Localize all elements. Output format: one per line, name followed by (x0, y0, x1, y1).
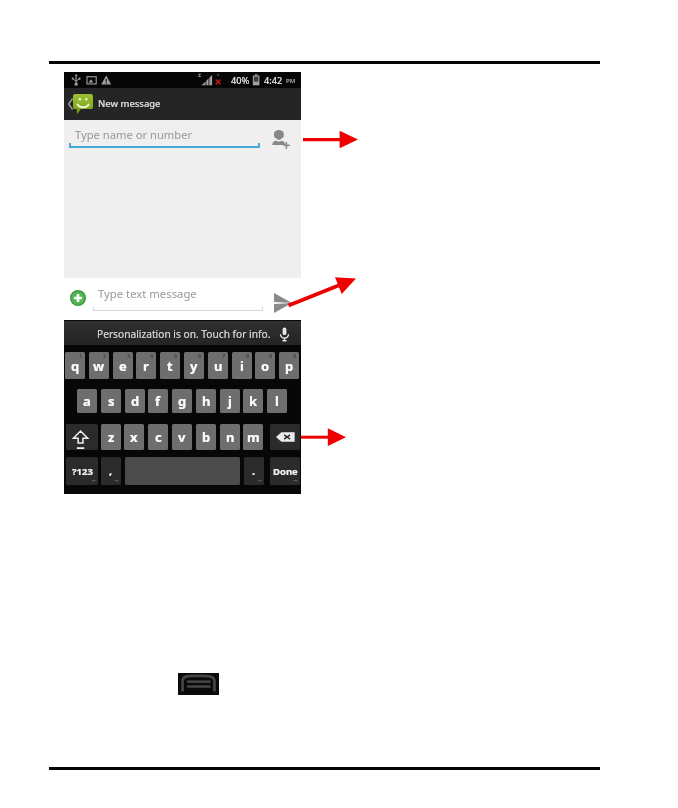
staticText: q (71, 357, 80, 375)
button[interactable]: z (101, 424, 121, 450)
button[interactable]: Backspace (270, 424, 300, 450)
staticText: b (202, 428, 211, 446)
staticText: g (178, 392, 187, 410)
button[interactable]: j (220, 389, 240, 413)
button[interactable]: Voice input (278, 326, 291, 342)
staticText: 5 (174, 352, 178, 359)
button[interactable]: ?123 (66, 457, 98, 485)
staticText: f (155, 392, 161, 410)
staticText: 1 (79, 352, 83, 359)
button[interactable]: k (243, 389, 263, 413)
button[interactable]: p (279, 352, 299, 379)
staticText: 3 (127, 352, 131, 359)
staticText: j (228, 392, 232, 410)
staticText: o (261, 357, 270, 375)
staticText: Type text message (98, 286, 197, 301)
button[interactable]: Keyboard (178, 673, 219, 695)
staticText: e (119, 357, 127, 375)
staticText: c (155, 428, 162, 446)
button[interactable]: t (160, 352, 180, 379)
button[interactable]: w (89, 352, 109, 379)
other: Back (65, 92, 76, 116)
staticText: ?123 (72, 465, 93, 478)
button[interactable]: l (267, 389, 287, 413)
staticText: u (214, 357, 223, 375)
button[interactable]: g (172, 389, 192, 413)
button[interactable]: s (101, 389, 121, 413)
staticText: 6 (198, 352, 202, 359)
button[interactable]: b (196, 424, 216, 450)
staticText: t (167, 357, 173, 375)
staticText: 7 (222, 352, 226, 359)
button[interactable]: q (65, 352, 85, 379)
button[interactable]: n (220, 424, 240, 450)
staticText: 9 (269, 352, 273, 359)
staticText: Personalization is on. Touch for info. (97, 327, 271, 341)
button[interactable]: Done (270, 457, 300, 485)
button[interactable]: Attach (70, 290, 86, 306)
button[interactable]: Send (274, 293, 292, 313)
button[interactable]: i (232, 352, 252, 379)
button[interactable]: u (208, 352, 228, 379)
staticText: New message (98, 97, 161, 110)
staticText: s (108, 392, 115, 410)
staticText: Type name or number (75, 127, 193, 142)
staticText: 0 (293, 352, 297, 359)
staticText: a (83, 392, 91, 410)
staticText: n (226, 428, 235, 446)
staticText: 40% (231, 74, 250, 87)
staticText: , (109, 463, 113, 478)
staticText: v (178, 428, 186, 446)
staticText: k (249, 392, 258, 410)
staticText: . (252, 463, 256, 478)
button[interactable]: Shift (66, 424, 98, 450)
button[interactable]: v (172, 424, 192, 450)
staticText: 4 (150, 352, 154, 359)
staticText: i (240, 357, 244, 375)
button[interactable]: d (125, 389, 145, 413)
button[interactable]: e (113, 352, 133, 379)
button[interactable]: , (101, 457, 121, 485)
staticText: m (247, 428, 260, 446)
staticText: z (108, 428, 115, 446)
staticText: y (190, 357, 198, 375)
staticText: d (131, 392, 140, 410)
staticText: 4:42 (264, 74, 283, 87)
button[interactable]: f (148, 389, 168, 413)
button[interactable]: m (243, 424, 263, 450)
button[interactable]: r (136, 352, 156, 379)
staticText: h (202, 392, 211, 410)
button[interactable]: Add contact (270, 126, 291, 150)
staticText: l (275, 392, 279, 410)
staticText: PM (286, 77, 296, 85)
staticText: p (285, 357, 294, 375)
button[interactable]: h (196, 389, 216, 413)
staticText: 2 (103, 352, 107, 359)
button[interactable]: x (124, 424, 144, 450)
button[interactable]: a (77, 389, 97, 413)
staticText: 8 (246, 352, 250, 359)
button[interactable]: . (244, 457, 264, 485)
staticText: Done (273, 465, 298, 478)
button[interactable]: Back (64, 88, 301, 120)
staticText: x (130, 428, 138, 446)
staticText: w (93, 357, 105, 375)
button[interactable]: o (255, 352, 275, 379)
button[interactable]: y (184, 352, 204, 379)
staticText: r (143, 357, 149, 375)
button[interactable]: c (148, 424, 168, 450)
